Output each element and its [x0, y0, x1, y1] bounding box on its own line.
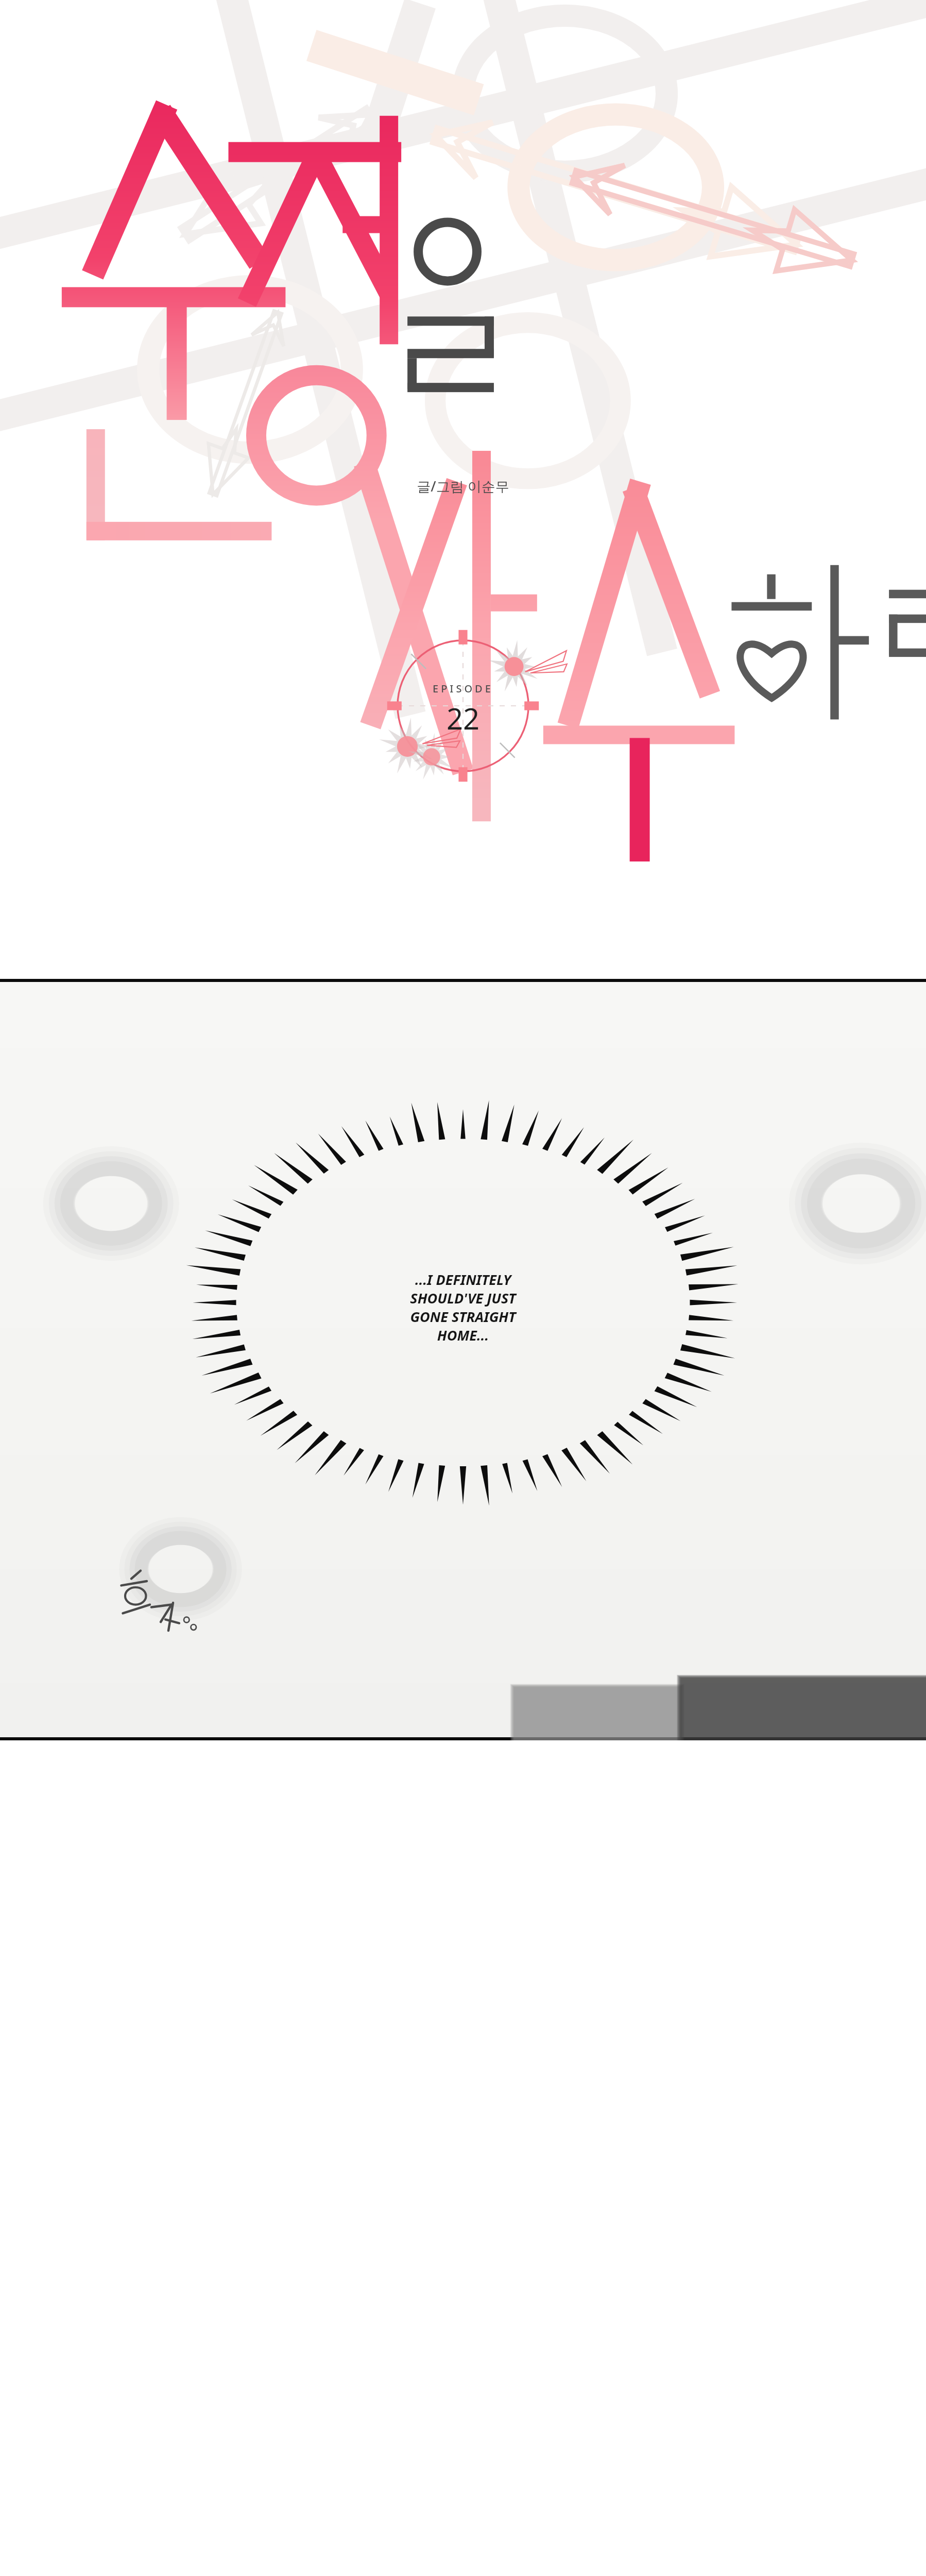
staticText: 22	[447, 699, 480, 738]
button[interactable]: ...I DEFINITELY SHOULD'VE JUST GONE STRA…	[0, 979, 926, 1740]
staticText: EPISODE	[433, 682, 493, 696]
button[interactable]: Episode 22	[0, 520, 926, 891]
staticText: ...I DEFINITELY SHOULD'VE JUST GONE STRA…	[396, 1270, 530, 1345]
staticText: 글/그림 이순무	[417, 477, 509, 496]
button[interactable]: 글/그림 이순무	[0, 0, 926, 520]
